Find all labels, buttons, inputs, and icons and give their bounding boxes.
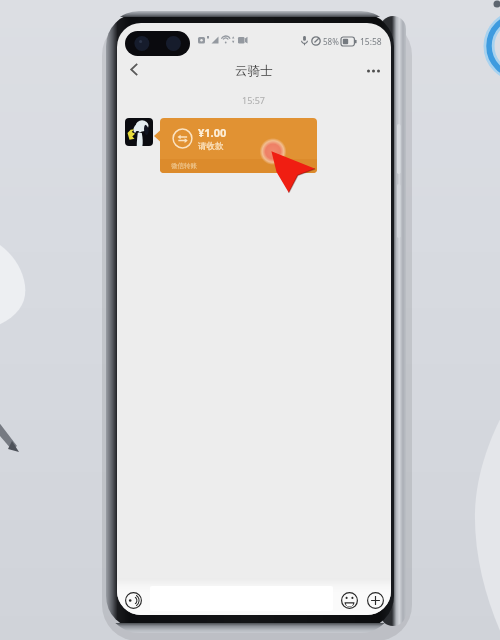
staticText: 请收款 [198,141,224,152]
button[interactable]: Avatar [125,118,153,146]
button[interactable]: ¥1.00 [160,118,317,173]
button[interactable]: Emoji [341,592,358,609]
button[interactable]: More functions [367,592,384,609]
staticText: 15:58 [360,36,382,48]
button[interactable]: Voice input [125,592,142,609]
button[interactable]: More options [358,56,388,86]
button[interactable]: Back [119,54,149,84]
staticText: 15:57 [242,94,266,106]
staticText: 云骑士 [235,63,273,79]
staticText: ¥1.00 [198,125,227,140]
staticText: 58% [323,36,339,47]
staticText: 微信转账 [171,162,197,170]
